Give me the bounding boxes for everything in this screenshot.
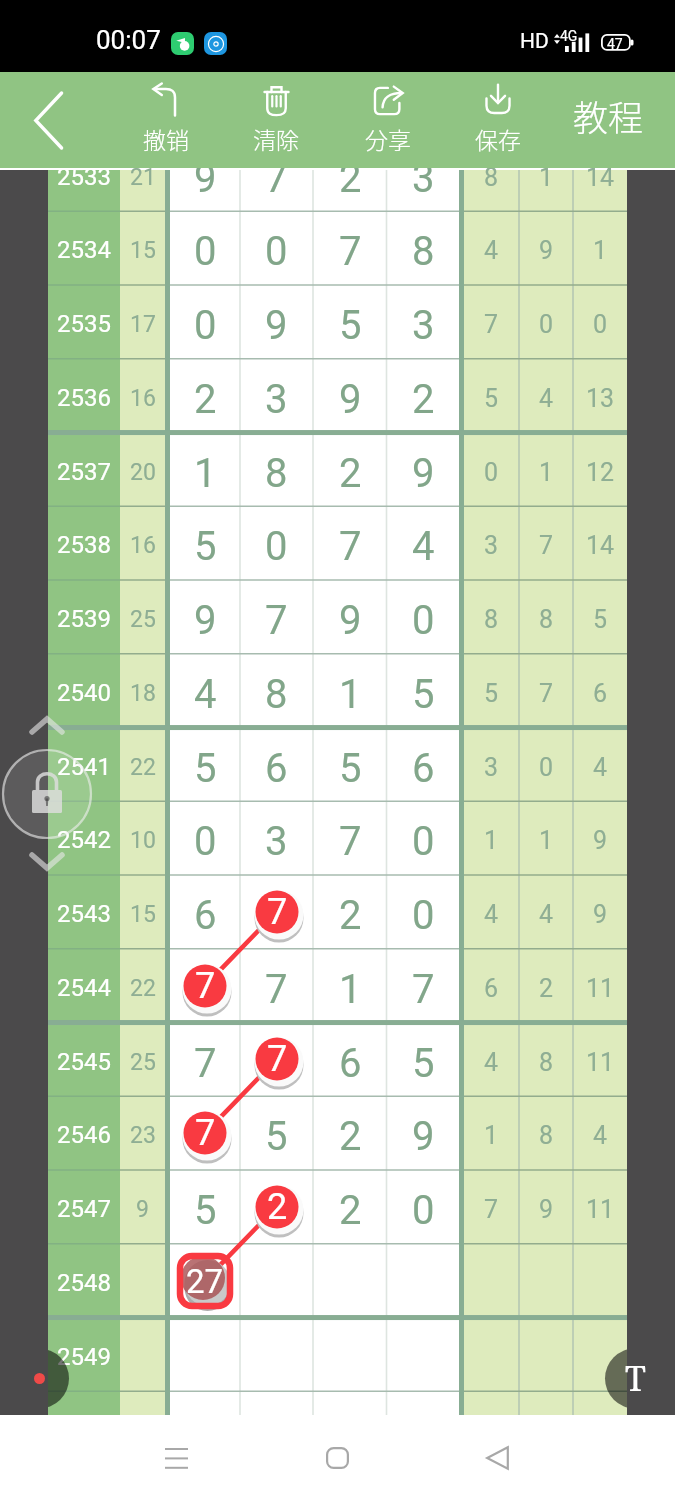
staticText: 1 [194,450,217,497]
staticText: 8 [539,1048,554,1077]
button[interactable]: Record [9,1348,69,1408]
staticText: 5 [484,679,499,708]
staticText: 7 [339,228,362,275]
staticText: 2537 [57,458,111,486]
staticText: 4 [593,753,608,782]
staticText: 4 [412,523,435,570]
button[interactable]: 分享 [348,79,428,157]
staticText: 9 [194,597,217,644]
staticText: 3 [265,818,288,865]
staticText: 5 [412,1040,435,1087]
staticText: 0 [412,1187,435,1234]
button[interactable]: Recents [136,1418,216,1498]
staticText: 0 [539,310,554,339]
staticText: 1 [539,458,554,487]
staticText: 7 [195,965,216,1007]
staticText: 15 [130,237,156,264]
button[interactable]: Back [10,80,88,160]
staticText: 2539 [57,605,111,633]
staticText: 7 [539,679,554,708]
button[interactable]: 教程 [558,72,658,159]
staticText: 11 [586,1048,615,1077]
staticText: 1 [484,826,499,855]
staticText: 6 [339,1040,362,1087]
staticText: 3 [265,376,288,423]
staticText: 2536 [57,384,111,412]
staticText: 7 [194,1113,217,1160]
staticText: 分享 [365,122,411,155]
staticText: 6 [265,745,288,792]
staticText: 9 [136,1196,149,1223]
button[interactable]: Lock [2,749,92,839]
staticText: 7 [412,966,435,1013]
staticText: T [625,1355,646,1401]
staticText: 0 [194,302,217,349]
staticText: 22 [130,975,156,1002]
staticText: 2 [194,376,217,423]
staticText: 2535 [57,310,111,338]
staticText: 3 [412,155,435,202]
staticText: 5 [194,523,217,570]
staticText: 6 [484,974,499,1003]
staticText: 5 [194,1187,217,1234]
staticText: 9 [593,900,608,929]
staticText: 5 [339,302,362,349]
staticText: 5 [194,745,217,792]
staticText: 教程 [573,90,644,141]
staticText: 27 [186,1262,224,1301]
staticText: 7 [194,1040,217,1087]
staticText: 2549 [57,1343,111,1371]
staticText: 2544 [57,974,111,1002]
button[interactable]: 保存 [458,79,538,157]
staticText: 2541 [57,753,111,781]
staticText: 14 [586,531,615,560]
button[interactable]: 撤销 [126,79,206,157]
staticText: 0 [265,228,288,275]
button[interactable]: Home [297,1418,377,1498]
staticText: 7 [265,892,288,939]
staticText: 7 [539,531,554,560]
staticText: 8 [539,605,554,634]
staticText: 9 [265,302,288,349]
staticText: 8 [265,671,288,718]
staticText: 2 [339,1113,362,1160]
staticText: 9 [593,826,608,855]
staticText: 9 [412,1113,435,1160]
staticText: 7 [265,1040,288,1087]
staticText: 6 [194,892,217,939]
staticText: 6 [593,679,608,708]
staticText: 18 [130,680,156,707]
staticText: 2 [339,450,362,497]
staticText: 2533 [57,163,111,191]
staticText: 15 [130,901,156,928]
staticText: 8 [484,163,499,192]
staticText: 6 [412,745,435,792]
staticText: 2 [339,1187,362,1234]
staticText: 25 [130,606,156,633]
staticText: 16 [130,532,156,559]
button[interactable]: 清除 [236,79,316,157]
staticText: 0 [484,458,499,487]
staticText: 4 [593,1121,608,1150]
staticText: 0 [539,753,554,782]
staticText: 2543 [57,900,111,928]
staticText: 2 [539,974,554,1003]
staticText: 2538 [57,531,111,559]
staticText: 12 [586,458,615,487]
staticText: 保存 [475,122,521,155]
staticText: 1 [539,826,554,855]
staticText: 4G [560,28,578,44]
staticText: 4 [194,671,217,718]
staticText: 1 [484,1121,499,1150]
staticText: 1 [339,966,362,1013]
staticText: 7 [339,818,362,865]
staticText: 5 [593,605,608,634]
staticText: 7 [339,523,362,570]
staticText: 16 [130,385,156,412]
staticText: 13 [586,384,615,413]
button[interactable]: Back [457,1418,537,1498]
button[interactable]: Text tool [605,1348,665,1408]
staticText: 5 [265,1113,288,1160]
staticText: 0 [412,892,435,939]
staticText: 25 [130,1049,156,1076]
